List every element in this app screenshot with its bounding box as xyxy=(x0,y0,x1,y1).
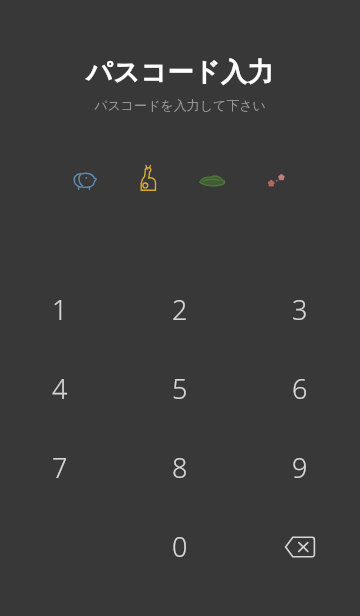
staticText: 4 xyxy=(52,370,68,407)
staticText: 7 xyxy=(52,449,68,486)
staticText: 2 xyxy=(172,291,188,328)
button[interactable]: 6 xyxy=(240,349,360,428)
button[interactable]: 1 xyxy=(0,270,120,349)
staticText: 5 xyxy=(172,370,188,407)
button[interactable]: Backspace xyxy=(240,507,360,586)
staticText: パスコード入力 xyxy=(0,56,360,89)
button[interactable]: 3 xyxy=(240,270,360,349)
button[interactable]: 5 xyxy=(120,349,240,428)
staticText: 9 xyxy=(292,449,308,486)
staticText: 0 xyxy=(172,528,188,565)
button[interactable]: 0 xyxy=(120,507,240,586)
button[interactable]: 2 xyxy=(120,270,240,349)
staticText: 3 xyxy=(292,291,308,328)
button[interactable]: 7 xyxy=(0,428,120,507)
button[interactable]: 9 xyxy=(240,428,360,507)
button[interactable]: 4 xyxy=(0,349,120,428)
button[interactable]: 8 xyxy=(120,428,240,507)
staticText: 1 xyxy=(52,291,68,328)
staticText: 8 xyxy=(172,449,188,486)
staticText: パスコードを入力して下さい xyxy=(0,97,360,113)
staticText: 6 xyxy=(292,370,308,407)
